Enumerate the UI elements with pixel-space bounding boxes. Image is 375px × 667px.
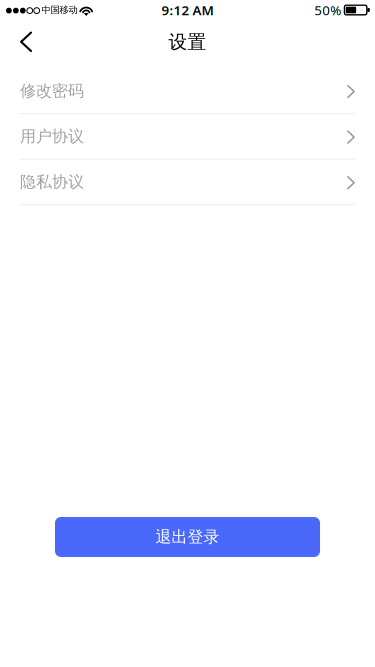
staticText: 隐私协议 <box>20 172 84 192</box>
button[interactable]: 退出登录 <box>55 517 320 557</box>
staticText: 设置 <box>168 30 206 53</box>
staticText: 退出登录 <box>155 527 219 547</box>
staticText: 9:12 AM <box>161 1 213 19</box>
staticText: 用户协议 <box>20 127 84 146</box>
button[interactable]: Back <box>0 20 45 64</box>
button[interactable]: 隐私协议 <box>0 160 375 205</box>
staticText: 修改密码 <box>20 81 84 101</box>
staticText: 中国移动 <box>42 4 78 16</box>
button[interactable]: 用户协议 <box>0 114 375 160</box>
button[interactable]: 修改密码 <box>0 68 375 114</box>
staticText: 50% <box>314 1 341 19</box>
